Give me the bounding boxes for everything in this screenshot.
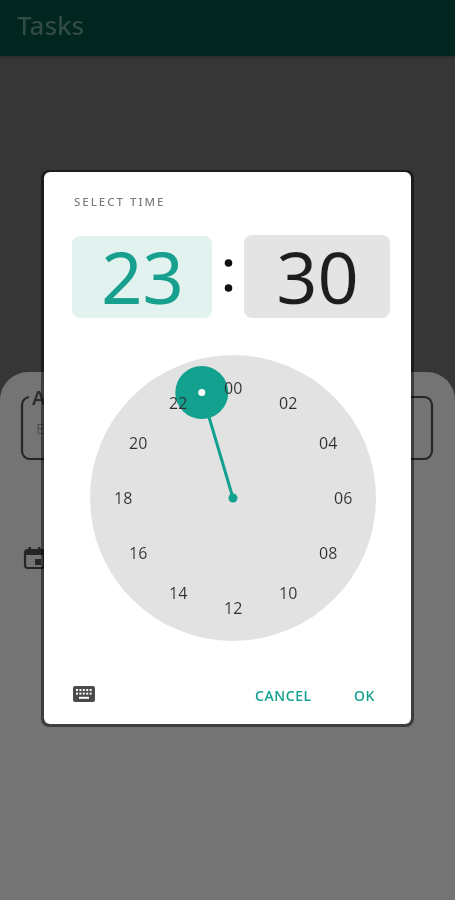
staticText: 30 (276, 235, 359, 310)
staticText: Tasks (17, 7, 85, 42)
staticText: CANCEL (255, 686, 312, 705)
staticText: 16 (129, 542, 148, 564)
staticText: 02 (279, 392, 298, 414)
staticText: 14 (169, 582, 188, 604)
staticText: 18 (114, 487, 133, 509)
staticText: 12 (224, 597, 243, 619)
staticText: 23 (101, 236, 184, 309)
button[interactable]: 30 (244, 235, 390, 318)
staticText: 00 (224, 377, 243, 399)
staticText: OK (354, 686, 376, 705)
button[interactable]: 23 (72, 236, 212, 318)
staticText: 04 (319, 432, 338, 454)
staticText: 06 (334, 487, 353, 509)
button[interactable]: OK (342, 680, 388, 710)
staticText: 08 (319, 542, 338, 564)
staticText: A (32, 384, 46, 411)
staticText: 10 (279, 582, 298, 604)
staticText: 22 (169, 392, 188, 414)
staticText: 20 (129, 432, 148, 454)
button[interactable]: CANCEL (240, 680, 326, 710)
staticText: E (36, 418, 45, 438)
staticText: SELECT TIME (74, 194, 166, 210)
button[interactable] (67, 680, 101, 708)
